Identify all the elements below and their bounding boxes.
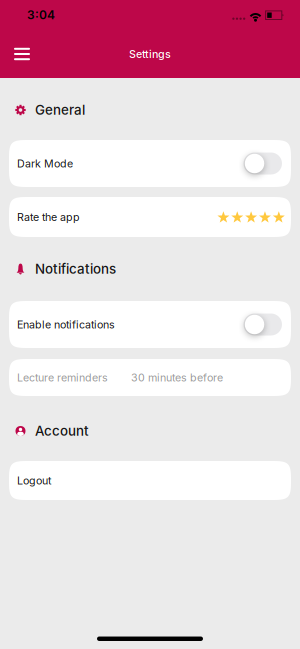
staticText: Rate the app — [17, 211, 80, 223]
staticText: Dark Mode — [17, 157, 73, 170]
button[interactable]: Star — [217, 211, 230, 223]
staticText: 30 minutes before — [131, 371, 223, 384]
button[interactable]: Dark Mode — [243, 152, 282, 174]
button[interactable]: Star — [273, 211, 285, 223]
button[interactable]: Star — [245, 211, 257, 223]
staticText: 3:04 — [27, 8, 55, 22]
staticText: Account — [35, 423, 89, 439]
staticText: Logout — [17, 474, 51, 487]
staticText: Settings — [129, 48, 171, 60]
staticText: Lecture reminders — [17, 371, 108, 384]
staticText: Enable notifications — [17, 318, 115, 331]
staticText: Notifications — [35, 261, 116, 277]
button[interactable]: Star — [231, 211, 243, 223]
button[interactable]: Logout — [9, 461, 291, 500]
button[interactable]: Menu — [0, 38, 30, 70]
button[interactable]: Star — [259, 211, 271, 223]
staticText: General — [35, 102, 85, 118]
button[interactable]: Enable notifications — [243, 313, 282, 335]
